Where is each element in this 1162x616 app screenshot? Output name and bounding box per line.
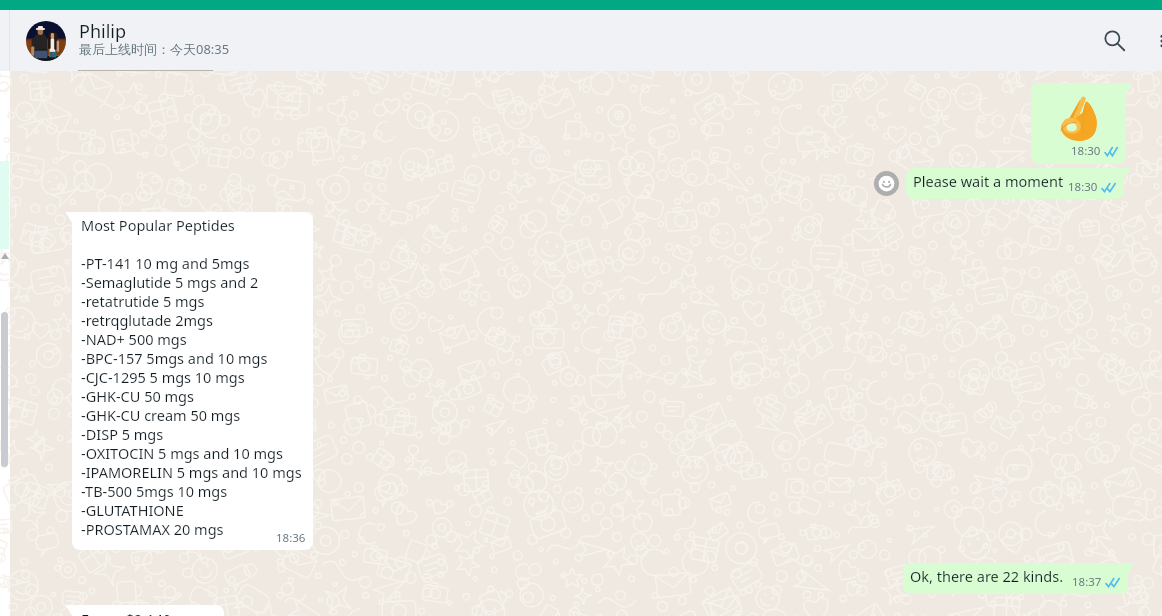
- staticText: Free $2,140: [81, 609, 172, 616]
- button[interactable]: Free $2,140: [72, 605, 224, 616]
- staticText: Ok, there are 22 kinds.: [910, 566, 1064, 586]
- staticText: 18:37: [1072, 574, 1102, 590]
- button[interactable]: Contact photo: [26, 21, 66, 61]
- button[interactable]: Please wait a moment: [906, 168, 1124, 199]
- staticText: Most Popular Peptides -PT-141 10 mg and …: [81, 215, 302, 539]
- staticText: Please wait a moment: [913, 171, 1064, 191]
- staticText: 18:36: [276, 530, 306, 546]
- button[interactable]: Most Popular Peptides -PT-141 10 mg and …: [72, 212, 313, 550]
- button[interactable]: Sticker: [874, 171, 899, 196]
- button[interactable]: Ok, there are 22 kinds.: [903, 563, 1128, 594]
- staticText: 18:30: [1068, 179, 1098, 195]
- staticText: 18:30: [1071, 143, 1101, 159]
- button[interactable]: 18:30: [1031, 83, 1126, 164]
- button[interactable]: More options: [1150, 29, 1162, 53]
- button[interactable]: Search: [1092, 18, 1138, 64]
- staticText: Philip: [79, 19, 127, 44]
- staticText: 最后上线时间：今天08:35: [79, 40, 230, 58]
